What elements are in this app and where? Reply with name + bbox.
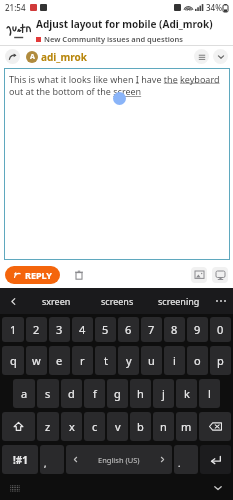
button[interactable]: u [141,346,162,375]
button[interactable]: Reply arrow [5,49,20,64]
button[interactable]: 6 [118,317,139,342]
button[interactable]: c [84,412,105,441]
button[interactable]: x [61,412,82,441]
staticText: screens [101,295,134,307]
staticText: screening [158,295,200,307]
button[interactable]: t [95,346,116,375]
button[interactable]: e [49,346,70,375]
staticText: English (US) [98,455,140,465]
staticText: 9 [194,322,201,337]
staticText: q [10,353,17,368]
button[interactable]: Shift [2,412,35,441]
button[interactable]: . [174,445,198,474]
staticText: 21:54 [5,2,26,13]
button[interactable]: 0 [210,317,231,342]
staticText: 6 [125,322,132,337]
button[interactable]: h [130,379,151,408]
button[interactable]: Enter [200,445,231,474]
staticText: y [126,353,132,368]
staticText: 5 [102,322,109,337]
button[interactable]: Hide keyboard [210,480,226,496]
staticText: o [194,353,201,368]
staticText: c [92,419,98,434]
staticText: 0 [217,322,224,337]
button[interactable]: n [153,412,174,441]
staticText: 34% [206,2,222,13]
staticText: 2 [33,322,40,337]
staticText: REPLY [25,269,52,281]
staticText: sxreen [42,295,71,307]
button[interactable]: r [72,346,93,375]
staticText: w [32,353,41,368]
button[interactable]: v [107,412,128,441]
button[interactable]: a [13,379,35,408]
staticText: New Community issues and questions [44,34,183,44]
staticText: a [21,386,28,401]
button[interactable]: REPLY [5,266,60,284]
button[interactable]: q [2,346,24,375]
button[interactable]: Menu [194,49,209,64]
staticText: This is what it looks like when I have t… [9,73,225,98]
button[interactable]: Desktop view [212,267,228,283]
button[interactable]: p [210,346,231,375]
button[interactable]: Previous suggestions [0,288,26,314]
button[interactable]: More suggestions [209,288,233,314]
staticText: k [184,386,190,401]
staticText: m [181,419,192,434]
staticText: f [93,386,97,401]
button[interactable]: Keyboard settings [7,480,23,496]
button[interactable]: y [118,346,139,375]
staticText: 3 [56,322,63,337]
button[interactable]: g [107,379,128,408]
button[interactable]: Delete [70,266,88,284]
staticText: 1 [10,322,17,337]
button[interactable]: screening [148,288,209,314]
staticText: 4 [79,322,86,337]
staticText: t [104,353,108,368]
staticText: j [162,386,165,401]
button[interactable]: 7 [141,317,162,342]
button[interactable]: m [176,412,197,441]
button[interactable]: s [37,379,59,408]
button[interactable]: 3 [49,317,70,342]
staticText: 7 [148,322,155,337]
button[interactable]: Insert image [191,267,207,283]
staticText: r [80,353,85,368]
staticText: . [178,457,181,469]
button[interactable]: English (US) [66,445,172,474]
staticText: u [148,353,155,368]
button[interactable]: d [61,379,82,408]
staticText: z [45,419,51,434]
staticText: n [160,419,167,434]
button[interactable]: k [176,379,197,408]
button[interactable]: j [153,379,174,408]
button[interactable]: 4 [72,317,93,342]
button[interactable]: Expand [213,49,228,64]
button[interactable]: l [199,379,220,408]
button[interactable]: w [26,346,47,375]
staticText: A [30,52,35,62]
button[interactable]: o [187,346,208,375]
staticText: h [137,386,144,401]
staticText: b [137,419,144,434]
button[interactable]: 9 [187,317,208,342]
button[interactable]: f [84,379,105,408]
button[interactable]: sxreen [26,288,87,314]
button[interactable]: b [130,412,151,441]
button[interactable]: Backspace [199,412,231,441]
button[interactable]: 8 [164,317,185,342]
button[interactable]: 1 [2,317,24,342]
staticText: s [45,386,51,401]
staticText: g [114,386,121,401]
button[interactable]: i [164,346,185,375]
button[interactable]: 2 [26,317,47,342]
staticText: , [44,457,47,469]
staticText: Adjust layout for mobile (Adi_mrok) [36,17,213,31]
staticText: v [115,419,121,434]
staticText: d [68,386,75,401]
button[interactable]: screens [87,288,148,314]
button[interactable]: 5 [95,317,116,342]
button[interactable]: , [40,445,64,474]
button[interactable]: z [37,412,59,441]
button[interactable]: !#1 [2,445,38,474]
